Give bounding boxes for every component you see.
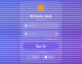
staticText: Google [32, 56, 37, 58]
staticText: Password [28, 33, 36, 35]
staticText: Email address [28, 25, 38, 27]
staticText: Forgot Password? [45, 38, 59, 40]
button[interactable]: Apple [42, 55, 55, 59]
staticText: Sign in to continue [35, 19, 46, 20]
staticText: or continue with [36, 51, 46, 53]
button[interactable]: Google [27, 55, 40, 59]
staticText: Sign In [36, 45, 46, 48]
button[interactable]: Sign In [23, 43, 59, 50]
button[interactable]: Forgot Password? [45, 38, 59, 40]
staticText: Apple [48, 56, 52, 58]
staticText: Welcome Back [30, 15, 52, 18]
